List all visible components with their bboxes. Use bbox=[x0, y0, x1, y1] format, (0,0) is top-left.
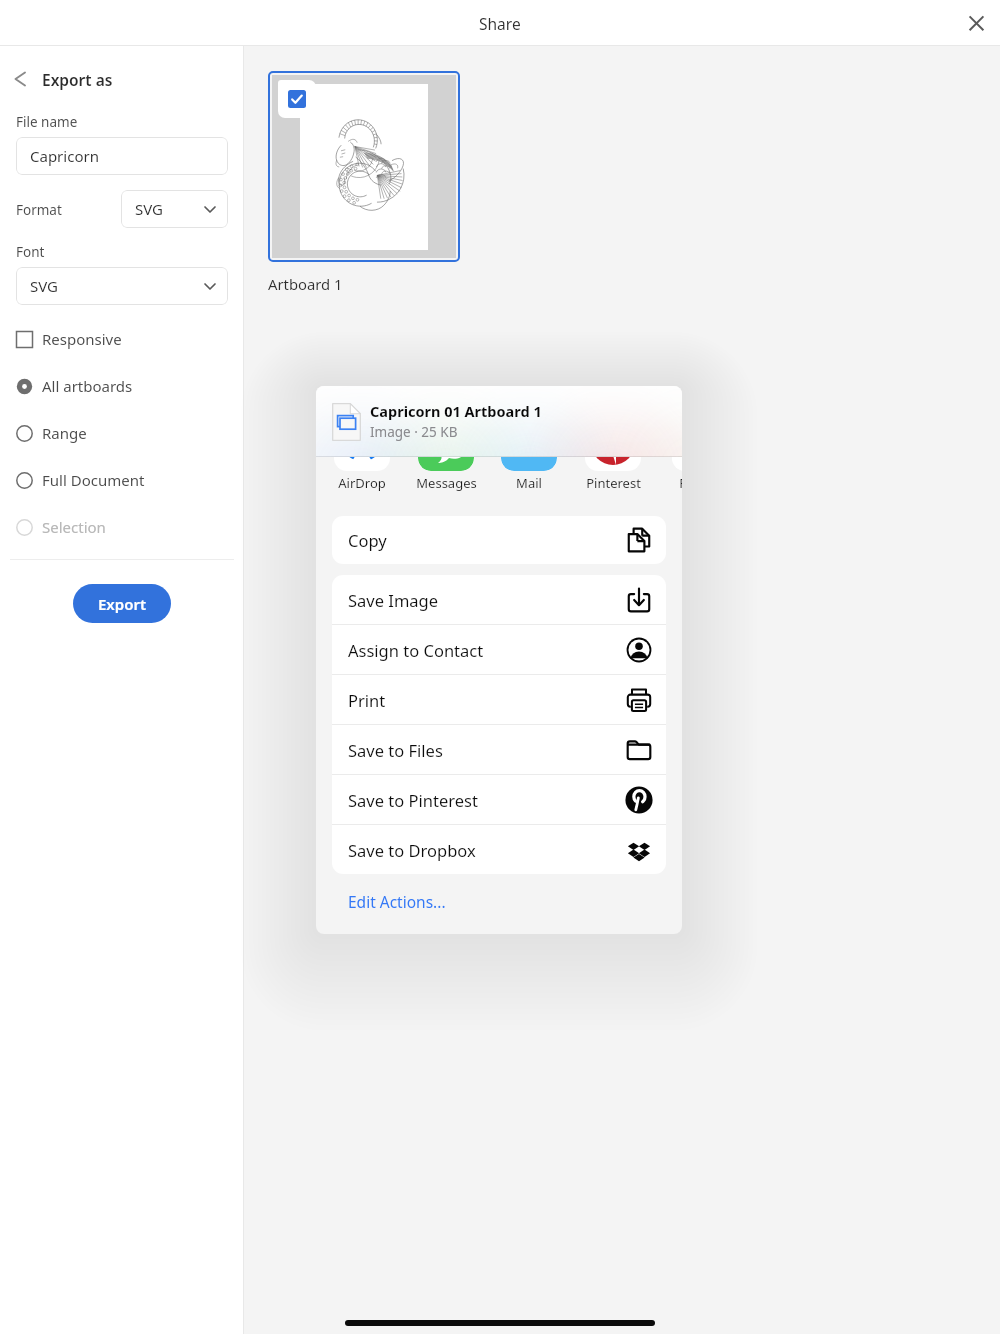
staticText: Save Image bbox=[348, 589, 439, 611]
button[interactable]: Messages bbox=[406, 415, 486, 495]
button[interactable]: Copy bbox=[332, 516, 666, 564]
button[interactable]: Selected bbox=[288, 90, 306, 108]
button[interactable]: Range bbox=[10, 419, 234, 447]
button[interactable]: Export bbox=[73, 584, 171, 623]
button[interactable]: Save to Files bbox=[332, 725, 666, 774]
staticText: Range bbox=[42, 423, 87, 443]
staticText: Save to Dropbox bbox=[348, 839, 476, 861]
staticText: Artboard 1 bbox=[268, 274, 343, 294]
staticText: Mail bbox=[516, 474, 542, 492]
button[interactable]: Full Document bbox=[10, 466, 234, 494]
button[interactable]: Close bbox=[960, 6, 994, 40]
staticText: SVG bbox=[135, 199, 164, 219]
button[interactable]: Capricorn bbox=[16, 137, 228, 175]
staticText: Image · 25 KB bbox=[370, 423, 458, 441]
button[interactable] bbox=[272, 75, 456, 258]
staticText: Assign to Contact bbox=[348, 639, 484, 661]
staticText: All artboards bbox=[42, 376, 133, 396]
button[interactable]: Save to Dropbox bbox=[332, 825, 666, 874]
button[interactable]: SVG bbox=[16, 267, 228, 305]
button[interactable]: AirDrop bbox=[322, 415, 402, 495]
staticText: Share bbox=[479, 13, 521, 34]
button[interactable]: Export as bbox=[8, 64, 121, 94]
staticText: Font bbox=[16, 243, 45, 261]
button[interactable]: Print bbox=[332, 675, 666, 724]
staticText: Responsive bbox=[42, 329, 122, 349]
button[interactable]: Selection bbox=[10, 513, 234, 541]
staticText: Print bbox=[348, 689, 386, 711]
button[interactable]: Pinterest bbox=[573, 415, 653, 495]
staticText: SVG bbox=[30, 276, 59, 296]
staticText: Messages bbox=[416, 474, 477, 492]
button[interactable]: All artboards bbox=[10, 372, 234, 400]
button[interactable]: Mail bbox=[489, 415, 569, 495]
staticText: Pinterest bbox=[586, 474, 641, 492]
staticText: Selection bbox=[42, 517, 106, 537]
staticText: Full Document bbox=[42, 470, 145, 490]
staticText: Export bbox=[98, 594, 147, 614]
staticText: Capricorn bbox=[30, 146, 99, 166]
staticText: Photos bbox=[679, 474, 682, 492]
button[interactable]: Save Image bbox=[332, 575, 666, 624]
staticText: Save to Files bbox=[348, 739, 443, 761]
staticText: Copy bbox=[348, 529, 387, 551]
staticText: File name bbox=[16, 113, 78, 131]
button[interactable]: SVG bbox=[121, 190, 228, 228]
button[interactable]: Assign to Contact bbox=[332, 625, 666, 674]
button[interactable]: Save to Pinterest bbox=[332, 775, 666, 824]
staticText: Format bbox=[16, 201, 62, 219]
button[interactable]: Photos bbox=[660, 415, 682, 495]
staticText: Capricorn 01 Artboard 1 bbox=[370, 401, 542, 421]
staticText: Edit Actions... bbox=[348, 891, 446, 912]
button[interactable]: Responsive bbox=[10, 325, 234, 353]
staticText: Export as bbox=[42, 69, 113, 90]
staticText: AirDrop bbox=[338, 474, 386, 492]
staticText: Save to Pinterest bbox=[348, 789, 478, 811]
button[interactable]: Edit Actions... bbox=[332, 886, 532, 916]
